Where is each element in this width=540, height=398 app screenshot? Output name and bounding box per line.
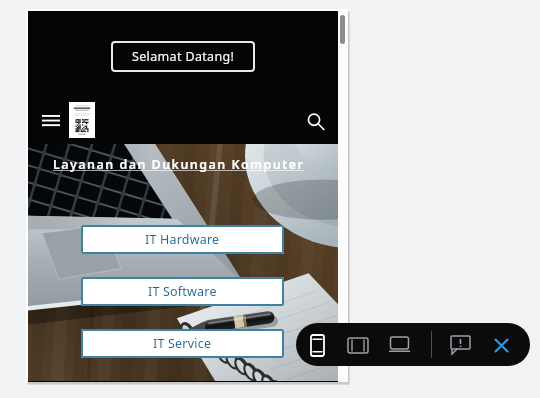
button[interactable]: Send feedback <box>446 330 474 360</box>
button[interactable]: Close <box>487 330 515 360</box>
button[interactable]: IT Service <box>81 329 284 358</box>
button[interactable]: Desktop preview <box>385 330 413 360</box>
staticText: Selamat Datang! <box>132 48 235 65</box>
staticText: Layanan dan Dukungan Komputer <box>53 156 305 173</box>
button[interactable]: IT Hardware <box>81 225 284 254</box>
button[interactable]: Selamat Datang! <box>111 41 255 72</box>
button[interactable]: Home <box>69 102 95 138</box>
staticText: IT Service <box>153 335 212 352</box>
button[interactable]: Phone preview <box>303 330 331 360</box>
staticText: IT Software <box>148 283 217 300</box>
staticText: IT Hardware <box>145 231 220 248</box>
button[interactable]: Tablet preview <box>344 330 372 360</box>
button[interactable]: Menu <box>36 106 66 136</box>
button[interactable]: Search <box>300 106 330 136</box>
button[interactable]: IT Software <box>81 277 284 306</box>
